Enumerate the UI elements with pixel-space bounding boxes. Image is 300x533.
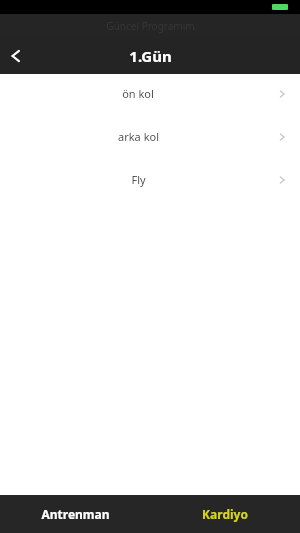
staticText: Kardiyo (202, 506, 248, 522)
button[interactable]: Fly (6, 164, 294, 195)
button[interactable]: Antrenman (0, 495, 150, 533)
button[interactable]: Back (0, 39, 34, 73)
staticText: Fly (131, 172, 146, 187)
button[interactable]: arka kol (6, 121, 294, 152)
button[interactable]: ön kol (6, 78, 294, 109)
staticText: arka kol (118, 129, 159, 144)
staticText: Antrenman (41, 506, 110, 522)
staticText: 1.Gün (129, 46, 172, 66)
button[interactable]: Kardiyo (150, 495, 300, 533)
staticText: ön kol (122, 86, 154, 101)
staticText: Güncel Programım (106, 19, 195, 33)
